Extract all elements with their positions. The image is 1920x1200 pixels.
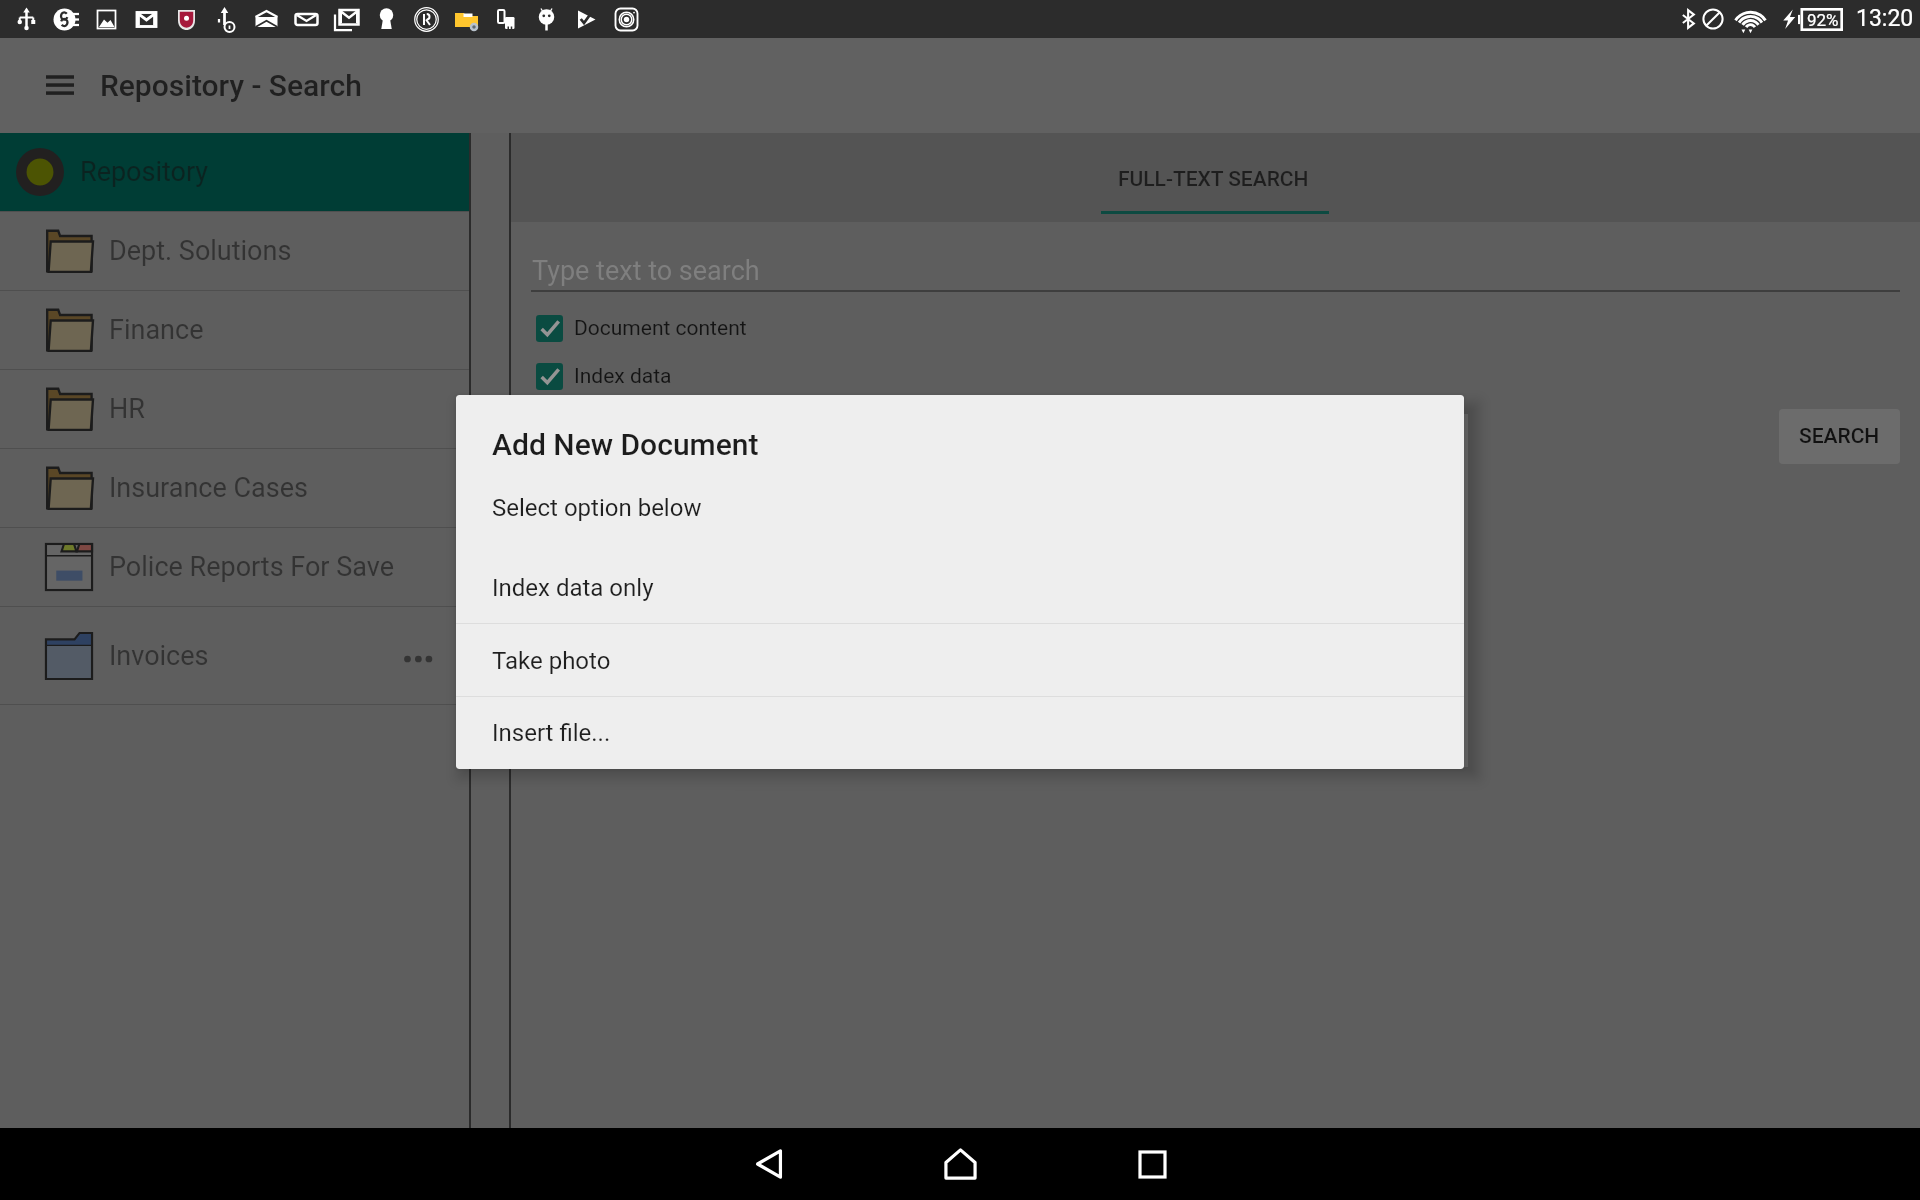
button[interactable]: Home xyxy=(912,1128,1008,1200)
button[interactable]: Dept. Solutions xyxy=(0,212,471,290)
button[interactable]: Repository xyxy=(0,133,471,211)
button[interactable]: Insurance Cases xyxy=(0,449,471,527)
staticText: Dept. Solutions xyxy=(109,235,292,267)
staticText: Repository - Search xyxy=(100,68,362,103)
staticText: Police Reports For Save xyxy=(109,551,394,583)
staticText: Select option below xyxy=(492,494,702,522)
button[interactable]: Back xyxy=(721,1128,817,1200)
staticText: 13:20 xyxy=(1856,5,1914,32)
staticText: Insurance Cases xyxy=(109,472,308,504)
staticText: Insert file... xyxy=(492,719,611,747)
staticText: Finance xyxy=(109,314,204,346)
button[interactable]: Open navigation drawer xyxy=(26,54,90,118)
staticText: Add New Document xyxy=(492,427,759,462)
staticText: Document content xyxy=(574,316,747,341)
button[interactable]: SEARCH xyxy=(1779,409,1900,464)
staticText: Index data xyxy=(574,364,672,389)
button[interactable]: Index data xyxy=(528,357,682,396)
staticText: Invoices xyxy=(109,640,209,672)
staticText: Repository xyxy=(80,156,209,188)
button[interactable]: Police Reports For Save xyxy=(0,528,471,606)
staticText: Take photo xyxy=(492,647,611,675)
button[interactable]: Invoices xyxy=(0,607,471,704)
button[interactable]: Document content xyxy=(528,309,757,348)
staticText: Type text to search xyxy=(532,255,760,287)
staticText: Index data only xyxy=(492,574,654,602)
button[interactable]: HR xyxy=(0,370,471,448)
button[interactable]: Insert file... xyxy=(456,697,1464,769)
button[interactable]: Take photo xyxy=(456,624,1464,697)
button[interactable]: More options xyxy=(399,630,451,682)
staticText: HR xyxy=(109,393,145,425)
staticText: SEARCH xyxy=(1799,424,1880,449)
staticText: FULL-TEXT SEARCH xyxy=(1118,167,1309,192)
button[interactable]: Finance xyxy=(0,291,471,369)
staticText: 92% xyxy=(1807,10,1839,30)
button[interactable]: Recent apps xyxy=(1104,1128,1200,1200)
button[interactable]: FULL-TEXT SEARCH xyxy=(1102,147,1325,212)
